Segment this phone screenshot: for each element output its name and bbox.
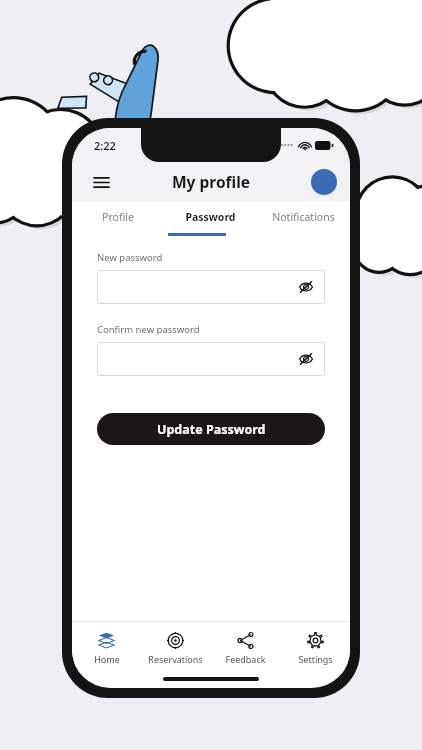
staticText: Profile xyxy=(102,210,134,224)
button[interactable]: Toggle password visibility xyxy=(296,349,316,369)
staticText: Password xyxy=(185,210,236,224)
staticText: 2:22 xyxy=(94,138,116,153)
staticText: Update Password xyxy=(157,421,266,438)
button[interactable]: Home xyxy=(72,622,141,674)
button[interactable]: Password xyxy=(164,201,257,233)
button[interactable]: Settings xyxy=(280,622,350,674)
staticText: Home xyxy=(94,653,120,665)
button[interactable]: Notifications xyxy=(257,201,350,233)
button[interactable]: Reservations xyxy=(141,622,210,674)
button[interactable]: Toggle password visibility xyxy=(97,342,325,376)
staticText: My profile xyxy=(172,171,251,192)
button[interactable]: Feedback xyxy=(210,622,280,674)
staticText: Reservations xyxy=(148,653,203,665)
button[interactable]: Toggle password visibility xyxy=(296,277,316,297)
staticText: New password xyxy=(97,251,163,264)
button[interactable]: Update Password xyxy=(97,413,325,445)
button[interactable]: Menu xyxy=(86,167,116,197)
staticText: Settings xyxy=(298,653,333,665)
button[interactable]: Profile avatar xyxy=(311,169,337,195)
staticText: Notifications xyxy=(272,210,335,224)
staticText: Feedback xyxy=(225,653,266,665)
button[interactable]: Profile xyxy=(72,201,164,233)
staticText: Confirm new password xyxy=(97,323,200,336)
button[interactable]: Toggle password visibility xyxy=(97,270,325,304)
